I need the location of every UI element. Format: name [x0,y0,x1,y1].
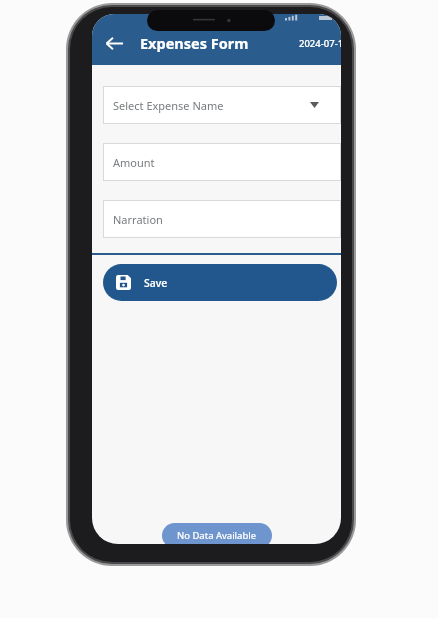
staticText: Narration [113,212,163,227]
staticText: Expenses Form [140,33,249,53]
staticText: Save [144,276,168,290]
button[interactable]: Select Expense Name [103,86,341,124]
button[interactable]: Save [103,264,337,301]
staticText: Amount [113,155,155,170]
staticText: Select Expense Name [113,98,224,113]
button[interactable]: Amount [103,143,341,181]
staticText: 2024-07-18 [299,37,341,50]
button[interactable]: No Data Available [162,523,272,544]
button[interactable]: Narration [103,200,341,238]
staticText: No Data Available [177,529,257,542]
button[interactable]: Back [97,26,131,60]
